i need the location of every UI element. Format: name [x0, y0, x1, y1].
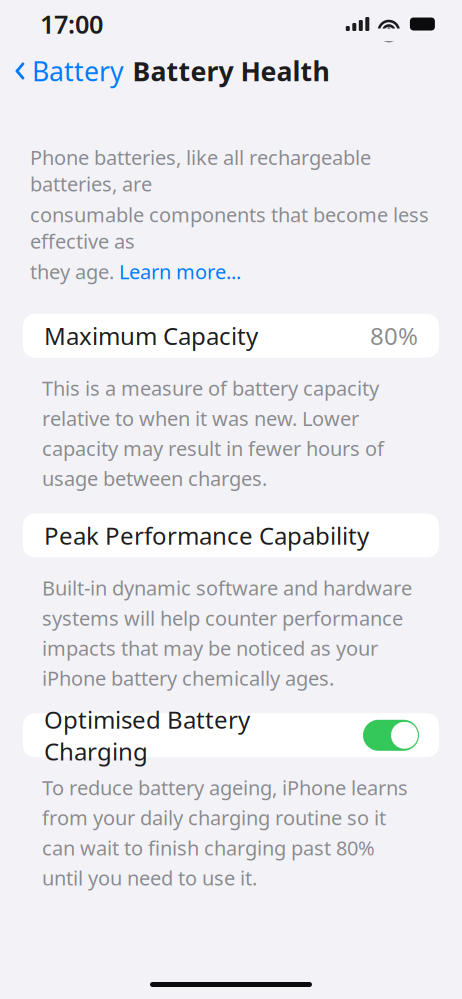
staticText: consumable components that become less e…	[30, 201, 429, 254]
staticText: they age.	[30, 258, 119, 285]
staticText: Battery	[32, 53, 124, 89]
button[interactable]: Maximum Capacity	[0, 314, 462, 358]
button[interactable]: Learn more...	[119, 258, 241, 285]
staticText: Peak Performance Capability	[44, 520, 369, 551]
staticText: Battery Health	[132, 53, 329, 89]
staticText: Optimised Battery Charging	[44, 703, 250, 767]
button[interactable]: Peak Performance Capability	[0, 513, 462, 557]
staticText: Phone batteries, like all rechargeable b…	[30, 144, 371, 197]
staticText: Built-in dynamic software and hardware s…	[42, 574, 412, 691]
staticText: 17:00	[40, 7, 103, 41]
button[interactable]: Optimised Battery Charging	[363, 720, 419, 751]
staticText: This is a measure of battery capacity re…	[42, 375, 384, 491]
button[interactable]: Battery	[0, 47, 124, 95]
staticText: Learn more...	[119, 258, 241, 285]
staticText: 80%	[370, 320, 418, 352]
staticText: To reduce battery ageing, iPhone learns …	[42, 774, 408, 891]
staticText: Maximum Capacity	[44, 320, 258, 352]
